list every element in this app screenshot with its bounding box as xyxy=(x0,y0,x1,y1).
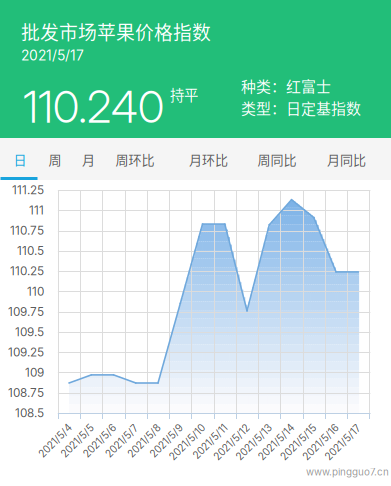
staticText: 110.25 xyxy=(10,264,44,278)
staticText: 2021/5/5 xyxy=(50,420,92,432)
staticText: 110.5 xyxy=(17,244,44,258)
button[interactable]: 月 xyxy=(71,138,105,180)
staticText: 109.25 xyxy=(8,345,44,359)
staticText: 2021/5/11 xyxy=(182,420,226,432)
staticText: 111 xyxy=(29,203,44,217)
staticText: 日 xyxy=(13,149,26,168)
staticText: www.pingguo7.cn xyxy=(306,466,389,478)
staticText: 110.75 xyxy=(10,223,44,238)
staticText: 周同比 xyxy=(257,149,296,168)
staticText: 110 xyxy=(27,284,44,298)
button[interactable]: 月同比 xyxy=(319,138,373,180)
staticText: 月同比 xyxy=(327,149,366,168)
staticText: 109 xyxy=(25,365,44,380)
staticText: 类型：日定基指数 xyxy=(241,97,361,119)
staticText: 111.25 xyxy=(12,183,44,197)
staticText: 月环比 xyxy=(189,149,228,168)
button[interactable]: 周环比 xyxy=(111,138,159,180)
staticText: 2021/5/14 xyxy=(246,420,292,432)
staticText: 2021/5/13 xyxy=(224,420,270,432)
staticText: 2021/5/17 xyxy=(313,420,359,432)
staticText: 109.75 xyxy=(8,304,44,319)
staticText: 2021/5/15 xyxy=(269,420,315,432)
staticText: 2021/5/7 xyxy=(95,420,137,432)
staticText: 周环比 xyxy=(115,149,154,168)
staticText: 种类：红富士 xyxy=(241,75,331,97)
staticText: 2021/5/10 xyxy=(157,420,203,432)
staticText: 批发市场苹果价格指数 xyxy=(21,18,211,45)
staticText: 108.75 xyxy=(8,386,44,400)
staticText: 持平 xyxy=(170,84,198,105)
button[interactable]: 周 xyxy=(38,138,72,180)
staticText: 2021/5/4 xyxy=(28,420,70,432)
button[interactable]: 周同比 xyxy=(250,138,304,180)
staticText: 2021/5/17 xyxy=(21,47,84,64)
staticText: 2021/5/9 xyxy=(139,420,181,432)
staticText: 周 xyxy=(48,149,61,168)
staticText: 2021/5/12 xyxy=(202,420,248,432)
staticText: 110.240 xyxy=(23,80,164,133)
staticText: 月 xyxy=(82,149,95,168)
button[interactable]: 日 xyxy=(2,138,38,180)
button[interactable]: 月环比 xyxy=(182,138,236,180)
staticText: 2021/5/6 xyxy=(72,420,114,432)
staticText: 109.5 xyxy=(15,325,44,339)
staticText: 2021/5/8 xyxy=(117,420,159,432)
staticText: 2021/5/16 xyxy=(291,420,337,432)
staticText: 108.5 xyxy=(15,406,44,420)
